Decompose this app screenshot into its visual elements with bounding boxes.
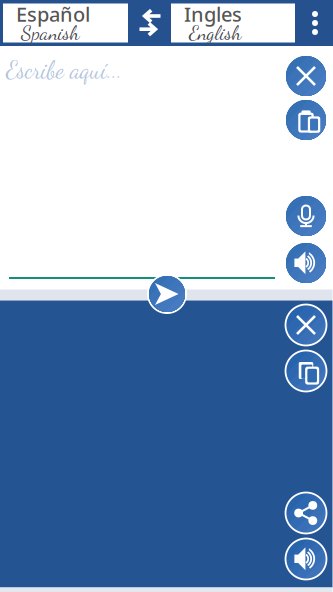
button[interactable]: Ingles [171,3,295,42]
button[interactable]: Translate [147,274,187,314]
button[interactable]: Clear text [286,56,326,96]
staticText: Escribe aquí... [6,56,122,84]
button[interactable]: Listen to translation [285,538,326,579]
button[interactable]: Copy [285,350,326,391]
button[interactable]: Listen [286,243,326,283]
button[interactable]: Speak [286,196,326,236]
button[interactable]: Share [285,492,326,533]
staticText: English [189,20,242,44]
button[interactable]: Clear translation [285,304,326,345]
staticText: Spanish [21,20,80,44]
button[interactable]: Paste [286,100,326,140]
button[interactable]: Swap languages [138,9,162,37]
button[interactable]: More options [297,0,333,46]
button[interactable]: Español [3,3,128,42]
staticText: Español [16,1,90,27]
staticText: Ingles [184,1,242,27]
